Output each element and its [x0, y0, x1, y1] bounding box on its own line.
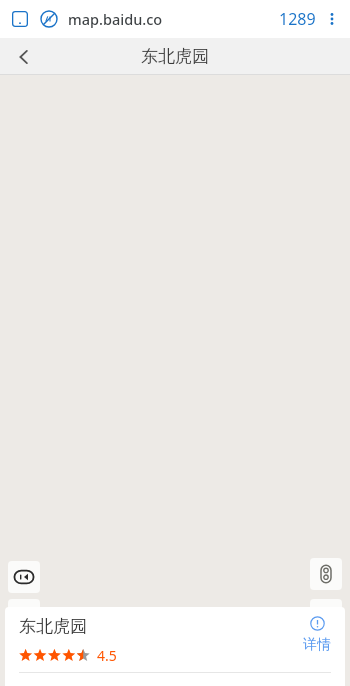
staticText: 4.5	[97, 646, 117, 665]
button[interactable]: Tabs	[8, 7, 32, 31]
button[interactable]: Details	[303, 616, 331, 654]
staticText: 1 公里	[81, 644, 113, 659]
staticText: 详情	[303, 636, 331, 654]
button[interactable]: Zoom out	[310, 632, 342, 664]
button[interactable]: More options	[322, 9, 342, 29]
button[interactable]: Download offline map	[8, 599, 40, 631]
staticText: 东北虎园	[19, 616, 87, 637]
button[interactable]: 东北虎园	[5, 607, 345, 686]
button[interactable]: map.baidu.com/mobile/w…	[68, 9, 173, 29]
button[interactable]: 1289	[279, 8, 316, 30]
button[interactable]: Zoom in	[310, 599, 342, 631]
button[interactable]: Compass	[310, 558, 342, 590]
button[interactable]: Back	[6, 39, 42, 75]
button[interactable]: Ad blocker	[36, 6, 62, 32]
button[interactable]: My location	[8, 637, 40, 669]
button[interactable]: Panorama	[8, 561, 40, 593]
staticText: 东北虎园	[141, 46, 209, 67]
